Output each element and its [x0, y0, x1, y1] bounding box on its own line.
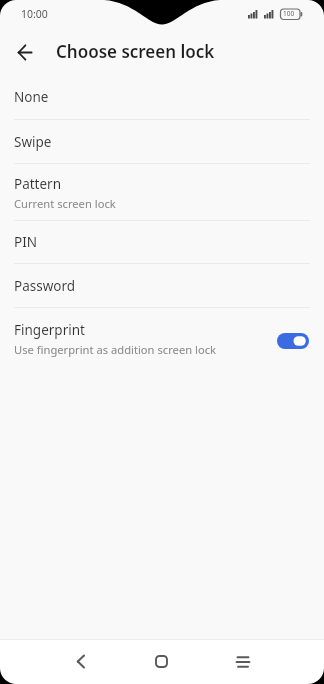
- button[interactable]: [41, 639, 121, 684]
- staticText: Pattern: [14, 175, 62, 193]
- button[interactable]: Swipe: [0, 120, 324, 163]
- button[interactable]: Pattern: [0, 164, 324, 220]
- button[interactable]: None: [0, 75, 324, 119]
- button[interactable]: [202, 639, 283, 684]
- button[interactable]: [121, 639, 202, 684]
- button[interactable]: PIN: [0, 221, 324, 263]
- staticText: Choose screen lock: [56, 40, 215, 63]
- button[interactable]: Password: [0, 264, 324, 307]
- staticText: 10:00: [21, 7, 48, 21]
- staticText: Current screen lock: [14, 196, 116, 211]
- staticText: Password: [14, 277, 76, 295]
- staticText: Use fingerprint as addition screen lock: [14, 342, 217, 357]
- staticText: Swipe: [14, 133, 52, 151]
- button[interactable]: Fingerprint: [0, 308, 324, 364]
- staticText: PIN: [14, 233, 38, 251]
- staticText: Fingerprint: [14, 321, 85, 339]
- button[interactable]: [7, 34, 43, 70]
- staticText: None: [14, 88, 49, 106]
- staticText: 100: [283, 9, 295, 18]
